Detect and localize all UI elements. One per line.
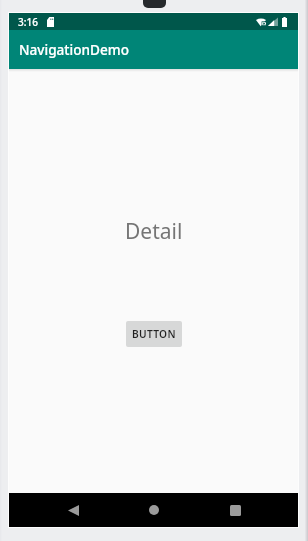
button[interactable]: Back — [53, 493, 93, 527]
button[interactable]: BUTTON — [126, 321, 182, 347]
button[interactable]: Recent apps — [215, 493, 255, 527]
staticText: Detail — [125, 217, 183, 246]
button[interactable]: Home — [134, 493, 174, 527]
staticText: NavigationDemo — [19, 40, 129, 59]
staticText: 3:16 — [18, 15, 38, 29]
staticText: BUTTON — [132, 327, 176, 341]
